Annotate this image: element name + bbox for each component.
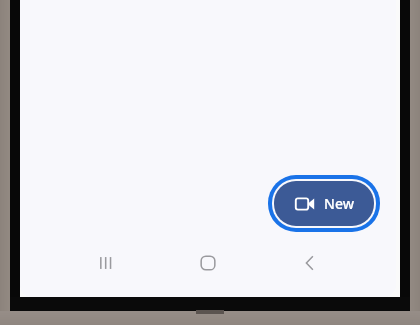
- button[interactable]: Home: [186, 241, 230, 285]
- button[interactable]: Back: [288, 241, 332, 285]
- button[interactable]: Recent apps: [84, 241, 128, 285]
- staticText: New: [324, 194, 354, 213]
- button[interactable]: New: [274, 181, 374, 226]
